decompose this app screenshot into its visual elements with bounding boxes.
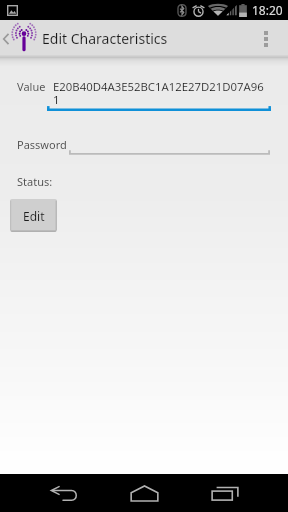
staticText: Password — [17, 137, 67, 152]
staticText: E20B40D4A3E52BC1A12E27D21D07A961 — [53, 79, 264, 107]
button[interactable]: Recent apps — [177, 474, 273, 512]
button[interactable]: Navigate up — [0, 26, 35, 52]
button[interactable]: Home — [96, 474, 192, 512]
staticText: Status: — [17, 174, 53, 189]
button[interactable]: Edit — [10, 199, 57, 232]
staticText: Edit Characteristics — [42, 29, 168, 48]
staticText: 18:20 — [252, 2, 283, 18]
button[interactable]: More options — [244, 20, 288, 57]
button[interactable]: Back — [15, 474, 111, 512]
staticText: Edit — [23, 208, 45, 224]
staticText: Value — [17, 79, 46, 94]
